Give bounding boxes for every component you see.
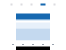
button[interactable]: More <box>53 3 55 5</box>
button[interactable]: Selected <box>40 3 45 5</box>
button[interactable]: Search <box>30 3 32 5</box>
button[interactable]: Back <box>10 3 12 5</box>
button[interactable]: Library <box>20 3 22 5</box>
